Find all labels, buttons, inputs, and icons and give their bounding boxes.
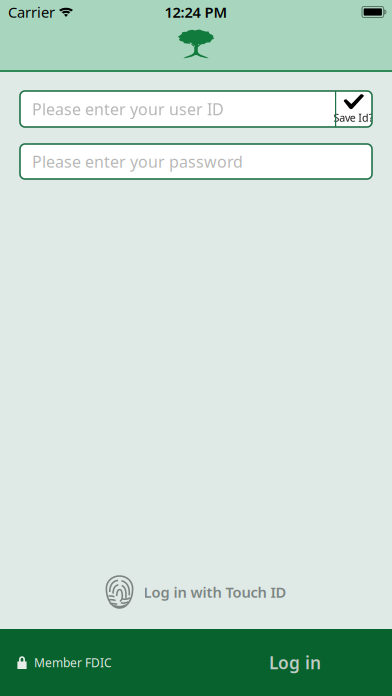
button[interactable]: Please enter your password (20, 144, 372, 179)
button[interactable]: Please enter your user ID (20, 91, 335, 127)
staticText: Please enter your user ID (32, 98, 224, 120)
button[interactable]: Log in with Touch ID (95, 569, 296, 615)
staticText: Member FDIC (34, 654, 112, 670)
button[interactable]: Save Id (335, 91, 372, 127)
button[interactable]: Member FDIC (17, 654, 112, 670)
staticText: Please enter your password (32, 151, 243, 172)
staticText: Log in (269, 651, 321, 674)
staticText: Log in with Touch ID (143, 582, 286, 602)
staticText: Save Id? (333, 110, 374, 125)
button[interactable]: Log in (257, 645, 333, 680)
staticText: Carrier (8, 2, 55, 22)
staticText: 12:24 PM (164, 2, 227, 22)
